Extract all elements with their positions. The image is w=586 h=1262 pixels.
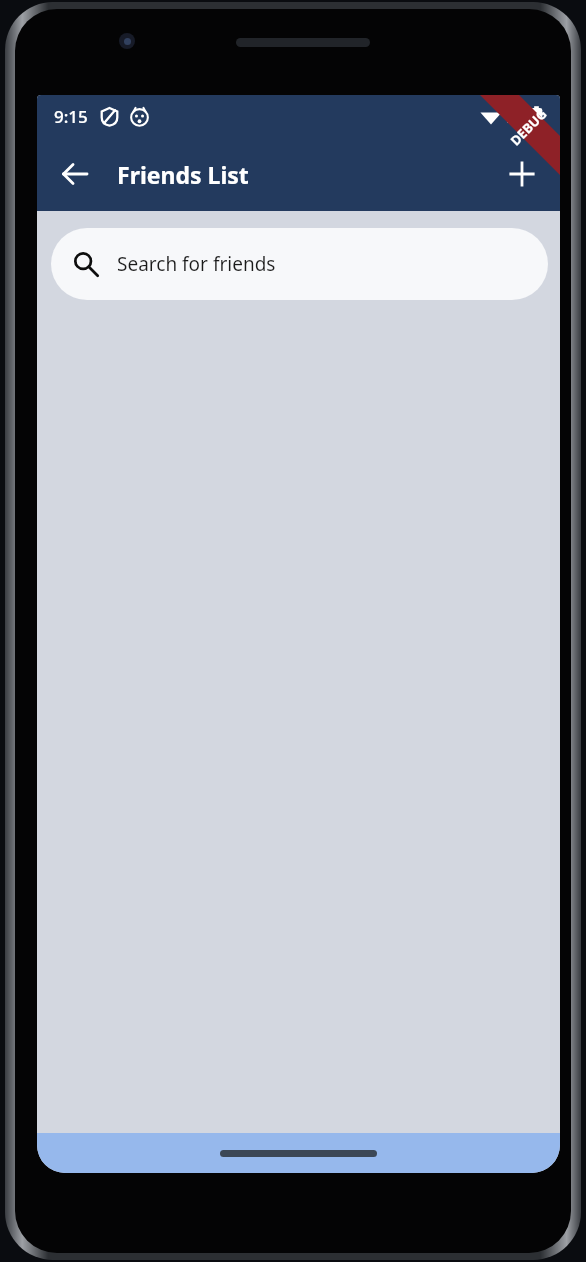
- staticText: Friends List: [117, 159, 249, 190]
- staticText: 9:15: [54, 105, 88, 128]
- staticText: DEBUG: [506, 105, 551, 149]
- button[interactable]: Back: [52, 151, 98, 197]
- button[interactable]: Search for friends: [51, 228, 548, 300]
- button[interactable]: Add friend: [499, 151, 545, 197]
- staticText: Search for friends: [117, 251, 276, 277]
